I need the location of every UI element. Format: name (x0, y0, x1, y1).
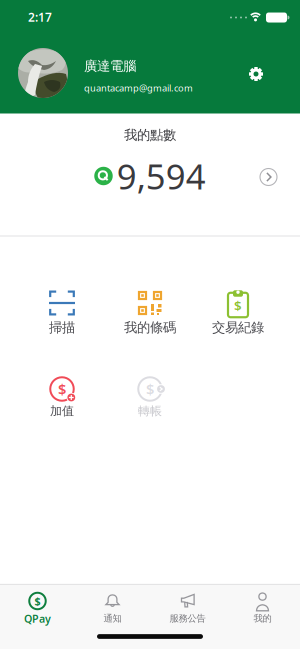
button[interactable]: $ (20, 372, 104, 428)
button[interactable]: 9,594 (94, 154, 206, 198)
staticText: 2:17 (28, 9, 52, 25)
staticText: $ (58, 379, 66, 399)
staticText: 轉帳 (138, 404, 162, 418)
button[interactable]: $ (196, 287, 280, 343)
button[interactable]: 我的條碼 (108, 287, 192, 343)
staticText: $ (234, 297, 242, 314)
staticText: 掃描 (49, 319, 75, 336)
button[interactable]: $ (0, 582, 75, 630)
staticText: QPay (24, 611, 51, 626)
staticText: 交易紀錄 (212, 319, 264, 336)
staticText: 我的 (253, 613, 271, 624)
button[interactable]: 我的 (225, 582, 300, 630)
staticText: quantacamp@gmail.com (84, 82, 193, 94)
staticText: 通知 (103, 613, 121, 624)
staticText: $ (34, 594, 40, 608)
button[interactable]: Points detail (255, 164, 281, 190)
staticText: 9,594 (117, 153, 206, 199)
staticText: $ (146, 379, 154, 399)
staticText: 服務公告 (169, 613, 205, 624)
staticText: 我的點數 (124, 127, 176, 143)
staticText: 廣達電腦 (84, 58, 136, 74)
button[interactable]: Settings (242, 60, 270, 88)
staticText: 我的條碼 (124, 319, 176, 336)
button[interactable]: 通知 (75, 582, 150, 630)
button[interactable]: 服務公告 (150, 582, 225, 630)
button[interactable]: 掃描 (20, 287, 104, 343)
staticText: 加值 (50, 404, 74, 418)
button[interactable]: $ (108, 372, 192, 428)
